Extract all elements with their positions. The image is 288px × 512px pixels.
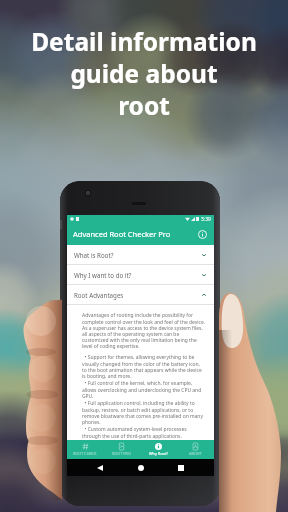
button[interactable]: ABOUT xyxy=(177,440,214,459)
staticText: Root Advantages xyxy=(74,291,124,299)
staticText: Advantages of rooting include the possib… xyxy=(82,312,205,350)
button[interactable]: Root Advantages xyxy=(67,285,214,305)
staticText: ROOT CHECK xyxy=(73,451,97,456)
staticText: • Support for themes, allowing everythin… xyxy=(82,354,205,380)
staticText: Why I want to do it? xyxy=(74,271,132,279)
staticText: ABOUT xyxy=(189,451,202,456)
staticText: Advanced Root Checker Pro xyxy=(73,229,171,239)
button[interactable]: Home xyxy=(133,460,149,476)
button[interactable]: What is Root? xyxy=(67,245,214,265)
staticText: • Custom automated system-level processe… xyxy=(82,426,205,440)
staticText: • Full application control, including th… xyxy=(82,400,205,426)
button[interactable]: Why Root? xyxy=(140,440,177,459)
button[interactable]: ROOT PRO xyxy=(103,440,140,459)
staticText: Why Root? xyxy=(149,451,168,456)
button[interactable]: ROOT CHECK xyxy=(67,440,103,459)
button[interactable]: Info xyxy=(195,227,209,241)
button[interactable]: Back xyxy=(92,460,108,476)
staticText: • Full control of the kernel, which, for… xyxy=(82,380,205,400)
button[interactable]: Why I want to do it? xyxy=(67,265,214,285)
button[interactable]: Recents xyxy=(173,460,189,476)
staticText: What is Root? xyxy=(74,251,114,259)
staticText: Detail information guide about root xyxy=(31,25,257,122)
staticText: ROOT PRO xyxy=(112,451,131,456)
staticText: 3:39 xyxy=(201,216,211,223)
